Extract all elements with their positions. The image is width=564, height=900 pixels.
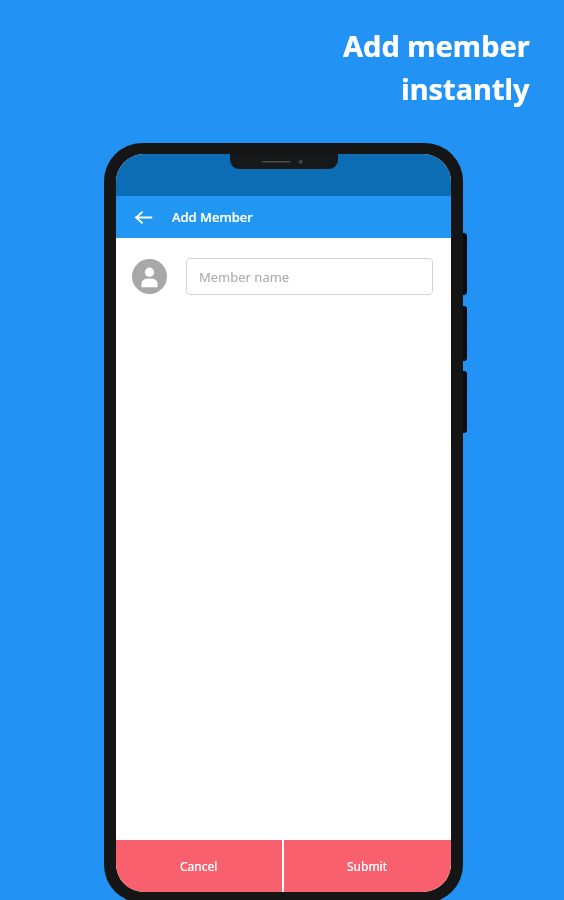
staticText: Member name [199, 268, 290, 286]
staticText: instantly [401, 69, 530, 108]
button[interactable]: Submit [284, 840, 451, 892]
button[interactable]: Back [126, 200, 160, 234]
staticText: Add member [343, 26, 530, 65]
button[interactable]: Member name [186, 258, 433, 295]
staticText: Cancel [180, 858, 218, 874]
button[interactable]: Cancel [116, 840, 282, 892]
staticText: Add Member [172, 208, 253, 226]
staticText: Submit [347, 858, 388, 874]
